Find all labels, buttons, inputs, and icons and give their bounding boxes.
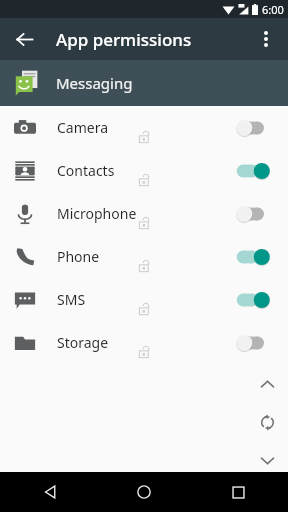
button[interactable]: More options [248, 21, 284, 57]
button[interactable]: Storage permission toggle [230, 329, 276, 357]
staticText: Storage [57, 333, 109, 352]
button[interactable]: Scroll up [246, 365, 288, 403]
button[interactable]: Back [6, 21, 42, 57]
button[interactable]: Phone permission toggle [230, 243, 276, 271]
button[interactable]: SMS permission toggle [230, 286, 276, 314]
button[interactable]: Microphone permission toggle [230, 200, 276, 228]
button[interactable]: Camera permission toggle [230, 114, 276, 142]
staticText: Messaging [56, 73, 133, 93]
button[interactable]: Recent apps [218, 472, 258, 512]
button[interactable]: Storage [0, 321, 288, 364]
staticText: SMS [57, 290, 86, 309]
staticText: Camera [57, 118, 109, 137]
staticText: Contacts [57, 161, 115, 180]
button[interactable]: Home [124, 472, 164, 512]
staticText: 6:00 [262, 2, 284, 17]
button[interactable]: Contacts [0, 149, 288, 192]
staticText: Microphone [57, 204, 137, 223]
button[interactable]: Microphone [0, 192, 288, 235]
button[interactable]: Phone [0, 235, 288, 278]
button[interactable]: Messaging [0, 60, 288, 106]
staticText: App permissions [56, 28, 192, 51]
button[interactable]: Scroll down [246, 441, 288, 479]
button[interactable]: SMS [0, 278, 288, 321]
button[interactable]: Contacts permission toggle [230, 157, 276, 185]
button[interactable]: Refresh [246, 403, 288, 441]
staticText: Phone [57, 247, 100, 266]
button[interactable]: Back [30, 472, 70, 512]
button[interactable]: Camera [0, 106, 288, 149]
